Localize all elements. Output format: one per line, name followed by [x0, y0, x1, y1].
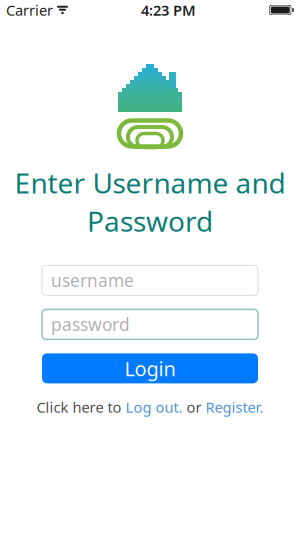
button[interactable]: Register.	[205, 397, 263, 417]
staticText: or	[182, 397, 205, 417]
staticText: 4:23 PM	[141, 0, 196, 20]
button[interactable]: password	[42, 309, 258, 339]
staticText: username	[51, 269, 134, 292]
staticText: Enter Username and	[14, 164, 285, 201]
staticText: password	[51, 313, 130, 336]
staticText: Log out.	[125, 397, 182, 417]
staticText: Login	[124, 355, 175, 382]
staticText: Password	[87, 202, 213, 239]
staticText: Click here to	[36, 397, 125, 417]
staticText: Register.	[205, 397, 263, 417]
staticText: Carrier	[6, 0, 53, 20]
button[interactable]: Log out.	[125, 397, 182, 417]
button[interactable]: username	[42, 265, 258, 295]
button[interactable]: Login	[42, 353, 258, 383]
